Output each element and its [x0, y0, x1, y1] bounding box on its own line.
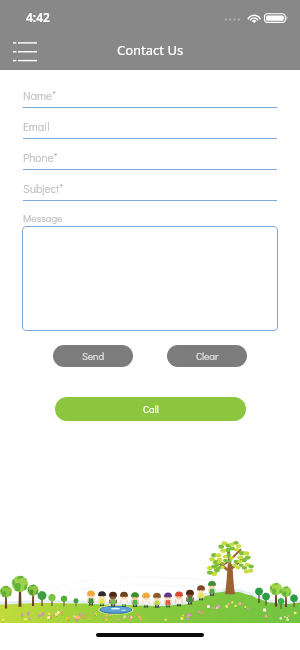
- button[interactable]: Phone*: [23, 150, 277, 181]
- button[interactable]: Call: [55, 397, 246, 421]
- staticText: Subject*: [23, 181, 64, 196]
- staticText: Email: [23, 119, 50, 134]
- staticText: Name*: [23, 88, 57, 103]
- staticText: Contact Us: [117, 41, 184, 59]
- button[interactable]: Subject*: [23, 181, 277, 212]
- button[interactable]: Email: [23, 119, 277, 150]
- staticText: Call: [143, 403, 159, 416]
- button[interactable]: Clear: [167, 345, 247, 367]
- button[interactable]: Name*: [23, 88, 277, 119]
- button[interactable]: Menu: [5, 33, 45, 67]
- staticText: Clear: [196, 350, 219, 363]
- staticText: 4:42: [26, 9, 50, 25]
- button[interactable]: [22, 226, 278, 331]
- button[interactable]: Send: [53, 345, 133, 367]
- staticText: Send: [82, 350, 105, 363]
- staticText: Message: [23, 212, 63, 225]
- staticText: Phone*: [23, 150, 58, 165]
